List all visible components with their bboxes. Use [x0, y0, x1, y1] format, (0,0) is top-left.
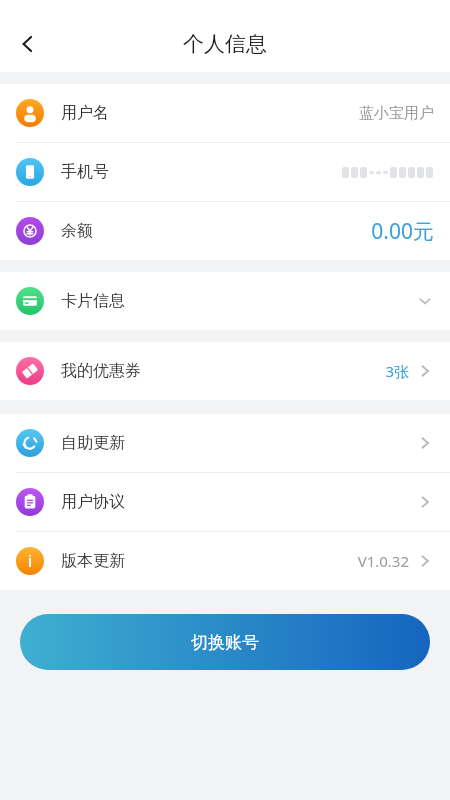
- staticText: 3张: [385, 361, 409, 381]
- button[interactable]: 我的优惠券: [0, 342, 450, 400]
- button[interactable]: 余额: [0, 202, 450, 260]
- staticText: 用户名: [61, 103, 109, 123]
- staticText: 自助更新: [61, 433, 125, 453]
- staticText: 蓝小宝用户: [359, 104, 434, 123]
- button[interactable]: Back: [6, 22, 50, 66]
- staticText: 用户协议: [61, 492, 125, 512]
- button[interactable]: 手机号: [0, 143, 450, 201]
- button[interactable]: 卡片信息: [0, 272, 450, 330]
- staticText: 切换账号: [191, 632, 259, 653]
- staticText: 我的优惠券: [61, 361, 141, 381]
- staticText: 手机号: [61, 162, 109, 182]
- button[interactable]: 版本更新: [0, 532, 450, 590]
- staticText: 版本更新: [61, 551, 125, 571]
- staticText: 余额: [61, 221, 93, 241]
- staticText: 卡片信息: [61, 291, 125, 311]
- staticText: V1.0.32: [357, 551, 409, 571]
- staticText: 个人信息: [183, 31, 267, 57]
- button[interactable]: 用户名: [0, 84, 450, 142]
- button[interactable]: 切换账号: [20, 614, 430, 670]
- staticText: 0.00元: [371, 217, 434, 246]
- button[interactable]: 用户协议: [0, 473, 450, 531]
- button[interactable]: 自助更新: [0, 414, 450, 472]
